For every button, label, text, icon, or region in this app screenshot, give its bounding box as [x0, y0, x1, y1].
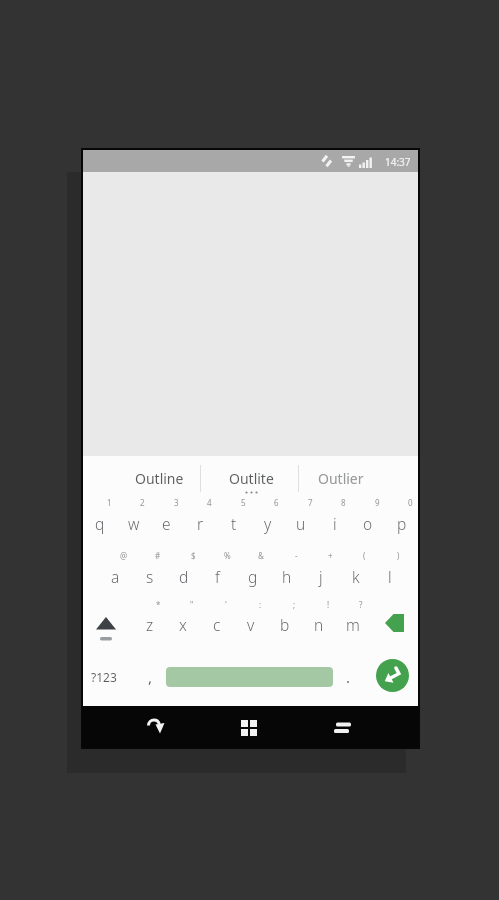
- button[interactable]: i: [318, 501, 351, 545]
- staticText: *: [156, 599, 161, 610]
- staticText: @: [120, 550, 128, 561]
- button[interactable]: f: [201, 554, 234, 598]
- button[interactable]: .: [333, 657, 363, 697]
- staticText: 7: [308, 497, 313, 508]
- button[interactable]: e: [150, 501, 183, 545]
- button[interactable]: [376, 659, 409, 692]
- staticText: w: [128, 513, 140, 534]
- staticText: 9: [375, 497, 380, 508]
- staticText: ": [190, 599, 194, 610]
- staticText: o: [363, 513, 373, 534]
- staticText: n: [314, 614, 324, 635]
- staticText: ,: [148, 667, 153, 687]
- staticText: Outline: [135, 469, 184, 488]
- staticText: 4: [207, 497, 212, 508]
- staticText: ;: [293, 599, 296, 610]
- button[interactable]: [229, 707, 269, 747]
- button[interactable]: u: [284, 501, 317, 545]
- staticText: r: [197, 513, 204, 534]
- staticText: $: [191, 550, 196, 561]
- staticText: &: [258, 550, 264, 561]
- staticText: u: [296, 513, 306, 534]
- button[interactable]: c: [200, 602, 233, 646]
- button[interactable]: o: [351, 501, 384, 545]
- staticText: p: [397, 513, 407, 534]
- staticText: .: [346, 667, 351, 687]
- staticText: c: [213, 614, 221, 635]
- button[interactable]: b: [268, 602, 301, 646]
- button[interactable]: q: [83, 501, 116, 545]
- staticText: v: [247, 614, 255, 635]
- staticText: x: [179, 614, 187, 635]
- staticText: -: [295, 550, 298, 561]
- staticText: Outlier: [318, 469, 364, 488]
- staticText: %: [224, 550, 231, 561]
- button[interactable]: g: [236, 554, 269, 598]
- button[interactable]: Outlier: [293, 460, 389, 496]
- staticText: 2: [140, 497, 145, 508]
- staticText: 14:37: [385, 155, 411, 169]
- staticText: :: [259, 599, 262, 610]
- staticText: e: [162, 513, 171, 534]
- button[interactable]: r: [184, 501, 217, 545]
- staticText: h: [282, 566, 292, 587]
- staticText: ?: [359, 599, 363, 610]
- staticText: ?123: [91, 669, 117, 685]
- staticText: m: [346, 614, 360, 635]
- button[interactable]: [87, 604, 125, 646]
- staticText: b: [280, 614, 290, 635]
- staticText: Outlite: [229, 469, 274, 488]
- button[interactable]: k: [339, 554, 372, 598]
- button[interactable]: n: [302, 602, 335, 646]
- staticText: s: [146, 566, 154, 587]
- button[interactable]: p: [385, 501, 418, 545]
- staticText: l: [388, 566, 392, 587]
- staticText: q: [95, 513, 105, 534]
- button[interactable]: ?123: [84, 657, 124, 697]
- button[interactable]: ,: [135, 657, 165, 697]
- staticText: 6: [274, 497, 279, 508]
- button[interactable]: [136, 707, 176, 747]
- button[interactable]: [322, 707, 362, 747]
- staticText: +: [328, 550, 333, 561]
- staticText: d: [179, 566, 189, 587]
- staticText: (: [363, 550, 366, 561]
- staticText: y: [264, 513, 272, 534]
- button[interactable]: t: [217, 501, 250, 545]
- staticText: ': [225, 599, 227, 610]
- button[interactable]: [166, 667, 333, 687]
- button[interactable]: s: [133, 554, 166, 598]
- staticText: f: [215, 566, 220, 587]
- button[interactable]: y: [251, 501, 284, 545]
- staticText: ): [397, 550, 400, 561]
- staticText: 0: [408, 497, 413, 508]
- staticText: 8: [341, 497, 346, 508]
- staticText: z: [146, 614, 154, 635]
- button[interactable]: Outlite: [207, 460, 295, 496]
- button[interactable]: x: [166, 602, 199, 646]
- staticText: i: [333, 513, 337, 534]
- staticText: 3: [174, 497, 179, 508]
- button[interactable]: z: [133, 602, 166, 646]
- staticText: 5: [241, 497, 246, 508]
- staticText: k: [352, 566, 360, 587]
- staticText: !: [327, 599, 330, 610]
- button[interactable]: Outline: [111, 460, 207, 496]
- staticText: #: [155, 550, 161, 561]
- button[interactable]: v: [234, 602, 267, 646]
- staticText: g: [248, 566, 258, 587]
- button[interactable]: m: [336, 602, 369, 646]
- button[interactable]: l: [373, 554, 406, 598]
- button[interactable]: [375, 602, 415, 644]
- button[interactable]: a: [99, 554, 132, 598]
- button[interactable]: w: [117, 501, 150, 545]
- button[interactable]: j: [304, 554, 337, 598]
- button[interactable]: d: [167, 554, 200, 598]
- button[interactable]: h: [270, 554, 303, 598]
- staticText: t: [231, 513, 237, 534]
- staticText: 1: [107, 497, 112, 508]
- staticText: j: [319, 566, 323, 587]
- staticText: a: [111, 566, 120, 587]
